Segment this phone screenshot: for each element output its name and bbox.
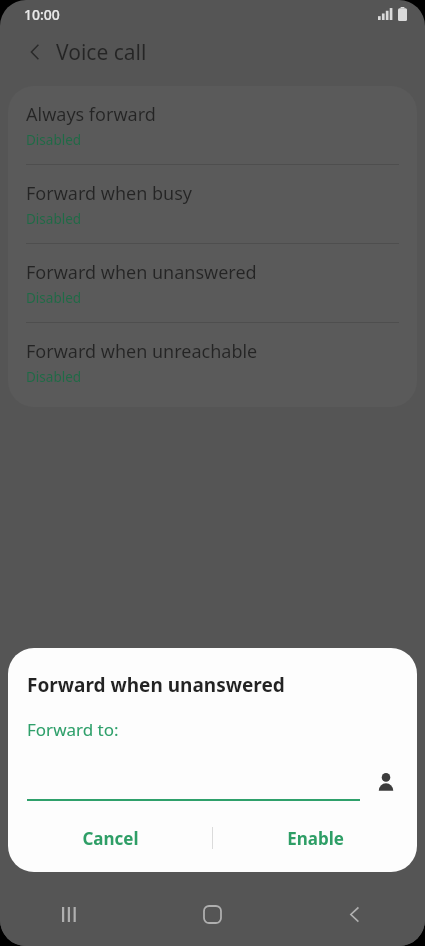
staticText: Forward when unanswered: [27, 672, 285, 698]
button[interactable]: Forward when busy: [8, 165, 417, 243]
staticText: Disabled: [26, 368, 82, 386]
button[interactable]: Forward when unreachable: [8, 323, 417, 401]
staticText: Disabled: [26, 131, 82, 149]
button[interactable]: Recent apps: [0, 882, 141, 946]
staticText: Forward when busy: [26, 181, 192, 206]
button[interactable]: Select contact: [369, 765, 403, 799]
button[interactable]: Back: [283, 882, 425, 946]
button[interactable]: Enable: [213, 810, 417, 866]
button[interactable]: Home: [141, 882, 283, 946]
staticText: Disabled: [26, 210, 82, 228]
staticText: Always forward: [26, 102, 156, 127]
button[interactable]: Forward when unanswered: [8, 244, 417, 322]
button[interactable]: [27, 775, 360, 801]
button[interactable]: Cancel: [8, 810, 212, 866]
staticText: Forward when unreachable: [26, 339, 258, 364]
staticText: Disabled: [26, 289, 82, 307]
staticText: Voice call: [56, 38, 147, 67]
staticText: Forward when unanswered: [26, 260, 257, 285]
button[interactable]: Navigate up: [18, 35, 52, 69]
button[interactable]: Always forward: [8, 86, 417, 164]
staticText: Enable: [287, 827, 344, 850]
staticText: Cancel: [82, 827, 139, 850]
staticText: Forward to:: [27, 718, 119, 741]
staticText: 10:00: [24, 5, 60, 24]
